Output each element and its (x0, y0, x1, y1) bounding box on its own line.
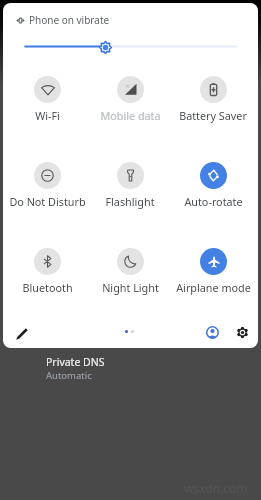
button[interactable]: Flashlight (90, 162, 170, 209)
staticText: Night Light (102, 280, 159, 295)
button[interactable]: Mobile data (90, 76, 170, 123)
staticText: Automatic (46, 369, 92, 382)
staticText: Mobile data (100, 108, 161, 123)
staticText: Auto-rotate (184, 194, 243, 209)
button[interactable]: Edit tiles (11, 323, 32, 344)
button[interactable]: Airplane mode (173, 248, 253, 295)
staticText: Phone on vibrate (29, 13, 110, 27)
button[interactable]: Bluetooth (7, 248, 87, 295)
staticText: Private DNS (46, 355, 105, 369)
staticText: Airplane mode (176, 280, 251, 295)
button[interactable]: Settings (232, 322, 253, 343)
button[interactable]: Night Light (90, 248, 170, 295)
button[interactable]: Battery Saver (173, 76, 253, 123)
staticText: Battery Saver (179, 108, 247, 123)
button[interactable]: User account (202, 322, 223, 343)
button[interactable]: Wi-Fi (7, 76, 87, 123)
button[interactable]: Do Not Disturb (7, 162, 87, 209)
staticText: Flashlight (105, 194, 155, 209)
staticText: Do Not Disturb (9, 194, 86, 209)
staticText: Bluetooth (22, 280, 73, 295)
staticText: Wi-Fi (35, 108, 60, 123)
button[interactable]: Auto-rotate (173, 162, 253, 209)
staticText: wsxdn.com (184, 480, 248, 496)
